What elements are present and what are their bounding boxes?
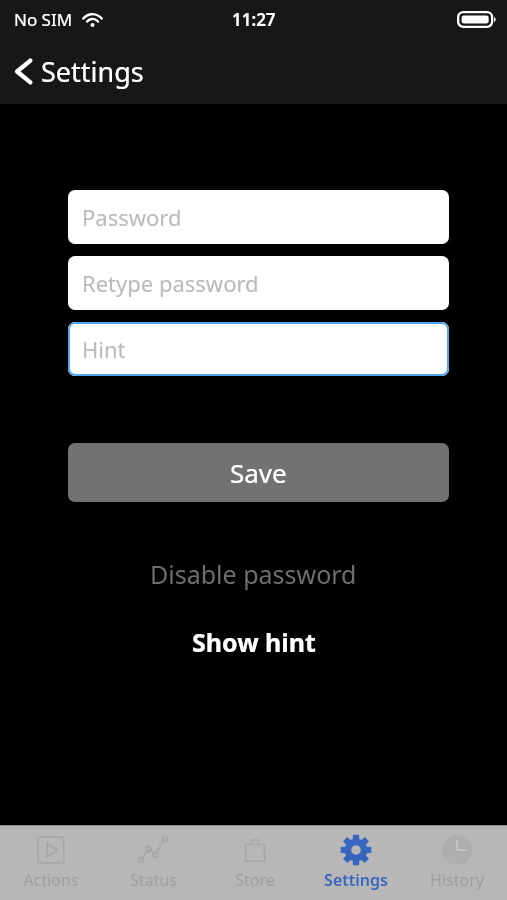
staticText: Disable password bbox=[150, 557, 357, 591]
button[interactable]: Show hint bbox=[0, 621, 507, 663]
staticText: Save bbox=[230, 455, 287, 490]
staticText: Settings bbox=[324, 869, 388, 891]
button[interactable]: Settings bbox=[305, 826, 406, 891]
staticText: Hint bbox=[82, 334, 126, 364]
staticText: Actions bbox=[23, 869, 79, 891]
button[interactable]: Password bbox=[68, 190, 449, 244]
staticText: History bbox=[430, 869, 484, 891]
button[interactable]: Disable password bbox=[0, 553, 507, 595]
other: Back bbox=[14, 58, 33, 85]
staticText: Show hint bbox=[192, 625, 316, 659]
button[interactable]: Retype password bbox=[68, 256, 449, 310]
staticText: Retype password bbox=[82, 268, 259, 298]
button[interactable]: Back bbox=[0, 45, 156, 98]
staticText: Status bbox=[130, 869, 177, 891]
button[interactable]: History bbox=[406, 826, 507, 891]
button[interactable]: Status bbox=[102, 826, 204, 891]
staticText: Store bbox=[235, 869, 275, 891]
button[interactable]: Hint bbox=[68, 322, 449, 376]
staticText: Settings bbox=[41, 53, 144, 90]
staticText: No SIM bbox=[14, 8, 73, 31]
staticText: Password bbox=[82, 202, 182, 232]
button[interactable]: Actions bbox=[0, 826, 102, 891]
button[interactable]: Save bbox=[68, 443, 449, 502]
staticText: 11:27 bbox=[232, 8, 276, 31]
button[interactable]: Store bbox=[204, 826, 305, 891]
